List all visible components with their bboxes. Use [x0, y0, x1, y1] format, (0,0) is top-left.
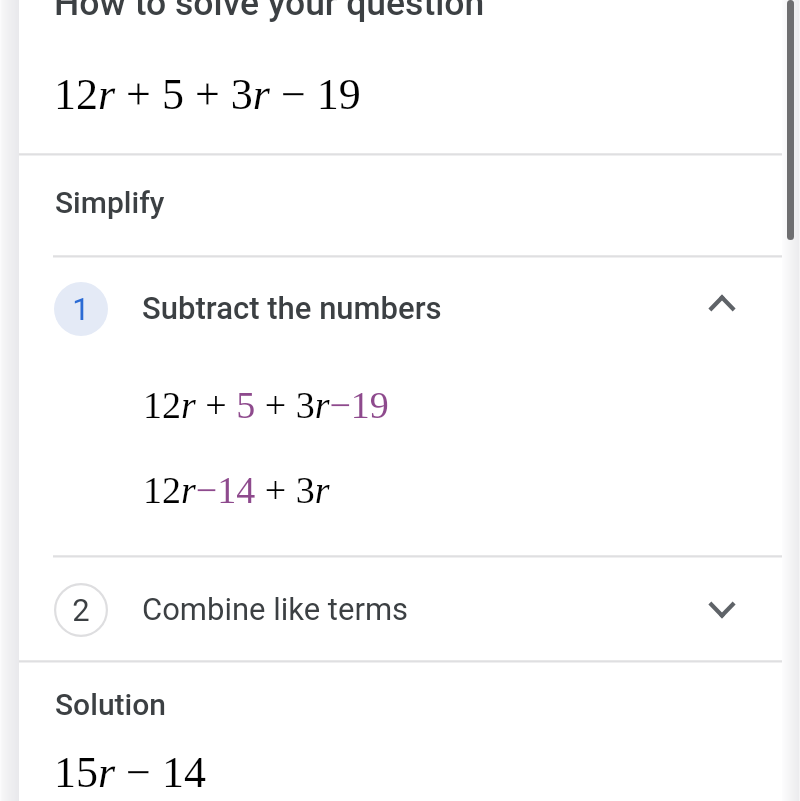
staticText: 2 — [72, 592, 90, 628]
staticText: 15r − 14 — [54, 748, 206, 797]
staticText: Combine like terms — [142, 591, 409, 627]
staticText: Simplify — [55, 185, 165, 220]
staticText: Subtract the numbers — [142, 290, 442, 326]
staticText: 12r + 5 + 3r−19 — [143, 384, 389, 426]
button[interactable]: Collapse step 1 — [692, 273, 752, 333]
button[interactable]: 1 — [18, 258, 782, 358]
button[interactable]: Expand step 2 — [692, 580, 752, 640]
staticText: Solution — [55, 687, 166, 722]
staticText: 12r + 5 + 3r − 19 — [54, 70, 361, 119]
staticText: 12r−14 + 3r — [143, 469, 330, 511]
button[interactable]: 2 — [18, 558, 782, 660]
staticText: 1 — [72, 291, 90, 327]
staticText: How to solve your question — [54, 0, 485, 24]
